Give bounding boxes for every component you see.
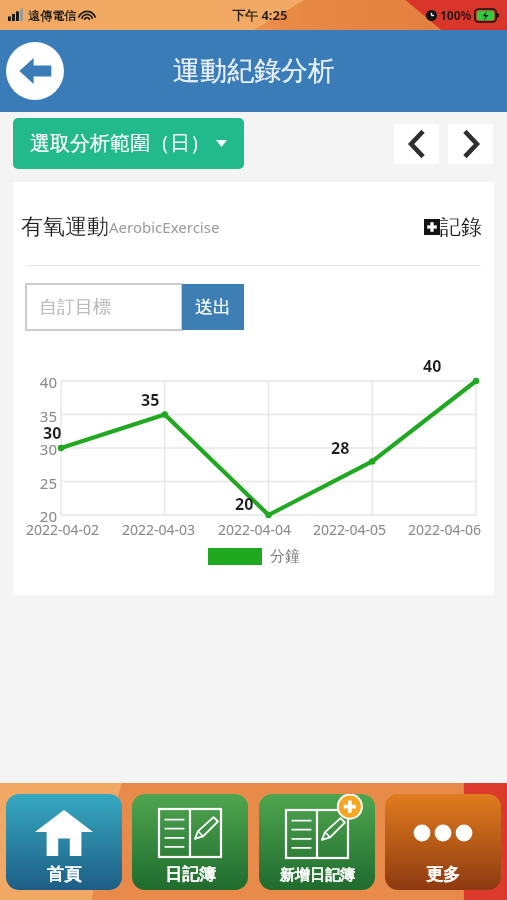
staticText: 20 <box>235 493 254 515</box>
staticText: 30 <box>31 439 57 459</box>
staticText: 新增日記簿 <box>280 866 355 885</box>
staticText: 40 <box>31 372 57 392</box>
button[interactable]: 送出 <box>182 284 244 330</box>
staticText: 2022-04-06 <box>408 520 482 539</box>
staticText: 有氧運動 <box>21 213 109 241</box>
staticText: 更多 <box>426 864 460 885</box>
staticText: 自訂目標 <box>39 296 111 319</box>
staticText: 2022-04-03 <box>122 520 196 539</box>
staticText: 28 <box>331 437 350 459</box>
staticText: 35 <box>31 406 57 426</box>
staticText: 30 <box>43 422 62 444</box>
staticText: 100% <box>440 7 472 23</box>
staticText: 首頁 <box>47 864 81 885</box>
staticText: 分鐘 <box>270 547 300 566</box>
button[interactable]: 新增日記簿 <box>259 794 375 890</box>
button[interactable]: 記錄 <box>420 210 486 244</box>
staticText: 20 <box>31 506 57 526</box>
staticText: AerobicExercise <box>109 217 220 237</box>
staticText: 記錄 <box>440 214 482 240</box>
staticText: 送出 <box>195 296 231 319</box>
staticText: 35 <box>141 389 160 411</box>
staticText: 40 <box>423 355 442 377</box>
button[interactable]: Next <box>448 124 493 164</box>
button[interactable]: Previous <box>394 124 439 164</box>
button[interactable]: 更多 <box>385 794 501 890</box>
staticText: 25 <box>31 473 57 493</box>
staticText: 2022-04-02 <box>26 520 100 539</box>
staticText: 下午 4:25 <box>232 6 288 24</box>
staticText: 2022-04-04 <box>218 520 292 539</box>
button[interactable]: Back <box>6 42 64 100</box>
staticText: 日記簿 <box>165 864 216 885</box>
button[interactable]: 日記簿 <box>132 794 248 890</box>
staticText: 遠傳電信 <box>28 8 76 23</box>
button[interactable]: 首頁 <box>6 794 122 890</box>
staticText: 運動紀錄分析 <box>173 54 335 88</box>
button[interactable]: 選取分析範圍（日） <box>13 118 244 169</box>
staticText: 選取分析範圍（日） <box>30 131 210 156</box>
button[interactable]: 自訂目標 <box>26 284 182 330</box>
staticText: 2022-04-05 <box>313 520 387 539</box>
